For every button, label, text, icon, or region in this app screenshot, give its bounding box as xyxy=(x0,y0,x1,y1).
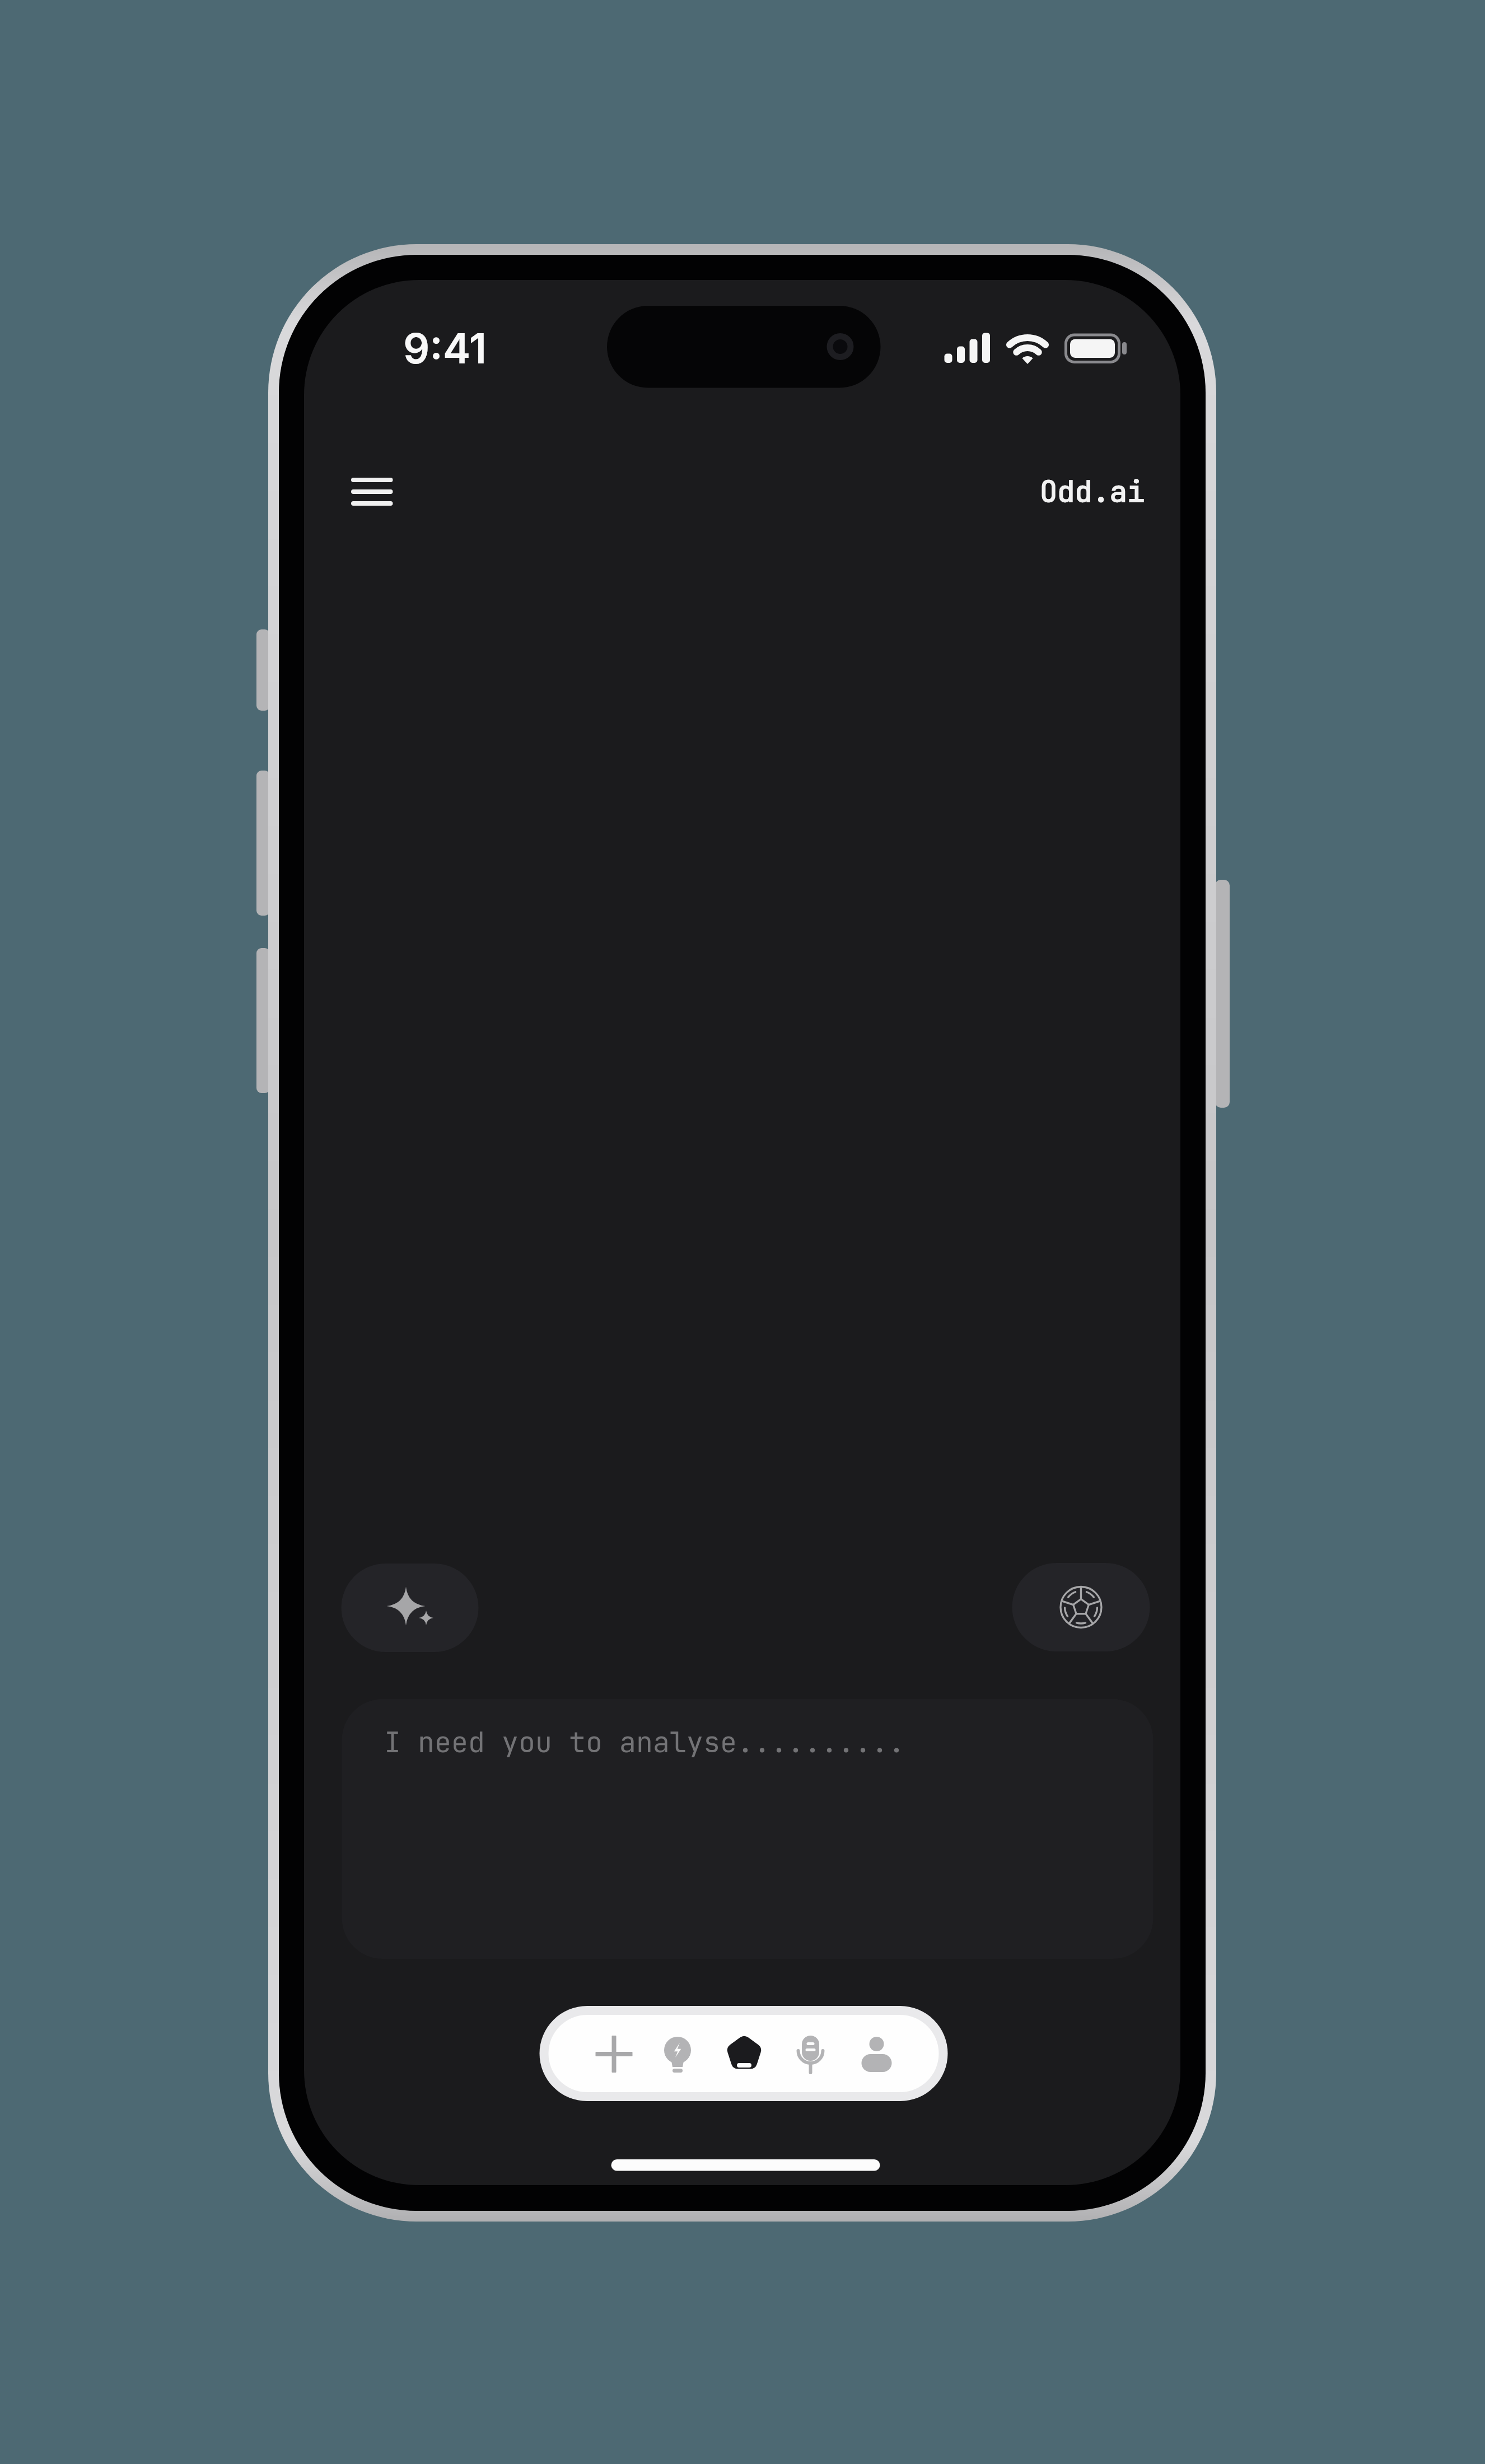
staticText: I need you to analyse.......... xyxy=(384,1724,905,1761)
staticText: Odd.ai xyxy=(1040,472,1145,511)
staticText: 9:41 xyxy=(403,323,487,374)
